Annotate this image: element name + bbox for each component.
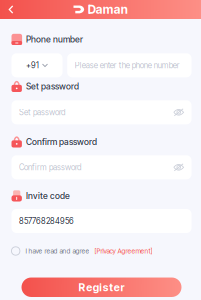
button[interactable]: +91 <box>11 53 62 77</box>
staticText: I have read and agree <box>25 247 89 255</box>
staticText: +91 <box>26 60 39 70</box>
button[interactable]: Register <box>21 277 181 297</box>
button[interactable]: I have read and agree <box>11 246 191 256</box>
staticText: Confirm password <box>19 162 81 172</box>
button[interactable]: Toggle password visibility <box>173 108 184 116</box>
staticText: Invite code <box>26 191 70 201</box>
staticText: Set password <box>26 81 79 92</box>
button[interactable]: Back <box>0 0 22 19</box>
staticText: Set password <box>19 107 65 117</box>
button[interactable]: Toggle password visibility <box>173 163 184 171</box>
staticText: Phone number <box>26 34 83 45</box>
staticText: [Privacy Agreement] <box>94 247 152 255</box>
staticText: Please enter the phone number <box>75 60 180 70</box>
staticText: Confirm password <box>26 137 97 147</box>
staticText: Register <box>79 281 124 294</box>
staticText: Daman <box>88 2 128 17</box>
staticText: 857768284956 <box>19 216 74 226</box>
